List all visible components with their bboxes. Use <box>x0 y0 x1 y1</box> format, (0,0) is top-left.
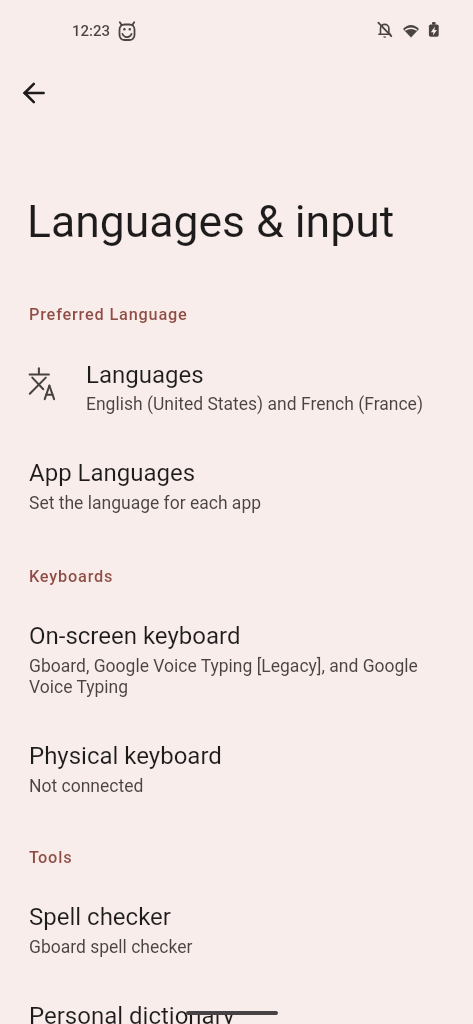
staticText: Preferred Language <box>29 305 188 324</box>
staticText: Set the language for each app <box>29 493 262 514</box>
staticText: Keyboards <box>29 567 114 586</box>
staticText: Physical keyboard <box>29 742 222 770</box>
staticText: Not connected <box>29 776 144 797</box>
staticText: Gboard spell checker <box>29 937 193 958</box>
button[interactable]: App Languages <box>0 450 473 528</box>
staticText: Personal dictionary <box>29 1002 235 1024</box>
button[interactable]: Physical keyboard <box>0 732 473 810</box>
staticText: On-screen keyboard <box>29 622 241 650</box>
button[interactable]: Languages <box>0 351 473 427</box>
staticText: Languages & input <box>27 196 395 248</box>
staticText: Gboard, Google Voice Typing [Legacy], an… <box>29 656 439 698</box>
button[interactable]: On-screen keyboard <box>0 610 473 710</box>
button[interactable]: Spell checker <box>0 895 473 971</box>
staticText: Spell checker <box>29 903 171 931</box>
staticText: App Languages <box>29 459 196 487</box>
staticText: Languages <box>86 361 204 389</box>
staticText: 12:23 <box>72 22 111 40</box>
staticText: English (United States) and French (Fran… <box>86 394 423 415</box>
staticText: Tools <box>29 848 73 867</box>
button[interactable]: Personal dictionary <box>0 990 473 1024</box>
button[interactable] <box>12 71 56 115</box>
